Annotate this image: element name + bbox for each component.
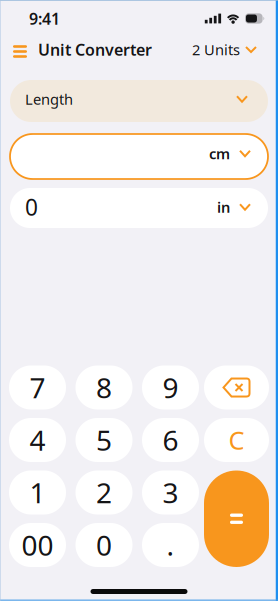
button[interactable]: Menu [9, 40, 31, 58]
staticText: 00 [21, 526, 53, 564]
button[interactable]: Equals [204, 470, 269, 567]
button[interactable]: cm [10, 134, 268, 179]
button[interactable]: 5 [75, 418, 132, 462]
button[interactable]: 6 [142, 418, 199, 462]
staticText: 3 [162, 474, 178, 511]
button[interactable]: 00 [9, 523, 66, 567]
staticText: Length [25, 89, 73, 109]
button[interactable]: Delete [204, 365, 269, 409]
button[interactable]: 9 [142, 365, 199, 409]
staticText: . [166, 526, 174, 564]
staticText: 0 [96, 526, 112, 564]
button[interactable]: 2 [75, 470, 132, 514]
button[interactable]: 4 [9, 418, 66, 462]
button[interactable]: C [204, 418, 269, 462]
staticText: 6 [162, 421, 178, 459]
button[interactable]: 1 [9, 470, 66, 514]
staticText: 2 Units [192, 40, 240, 59]
staticText: Unit Converter [38, 39, 152, 60]
button[interactable]: 0 [75, 523, 132, 567]
staticText: 7 [29, 369, 45, 406]
button[interactable]: Length [10, 80, 268, 122]
staticText: 8 [96, 369, 112, 406]
staticText: 4 [29, 421, 45, 459]
button[interactable]: 8 [75, 365, 132, 409]
staticText: C [228, 423, 244, 457]
button[interactable]: 0 [10, 188, 268, 228]
button[interactable]: 3 [142, 470, 199, 514]
staticText: 9 [162, 369, 178, 406]
staticText: cm [209, 144, 230, 163]
button[interactable]: 2 Units [192, 40, 256, 59]
staticText: 2 [96, 474, 112, 511]
staticText: 9:41 [29, 8, 60, 29]
staticText: 1 [29, 474, 45, 511]
staticText: 5 [96, 421, 112, 459]
staticText: in [217, 197, 230, 217]
button[interactable]: 7 [9, 365, 66, 409]
staticText: 0 [25, 192, 38, 222]
button[interactable]: . [142, 523, 199, 567]
